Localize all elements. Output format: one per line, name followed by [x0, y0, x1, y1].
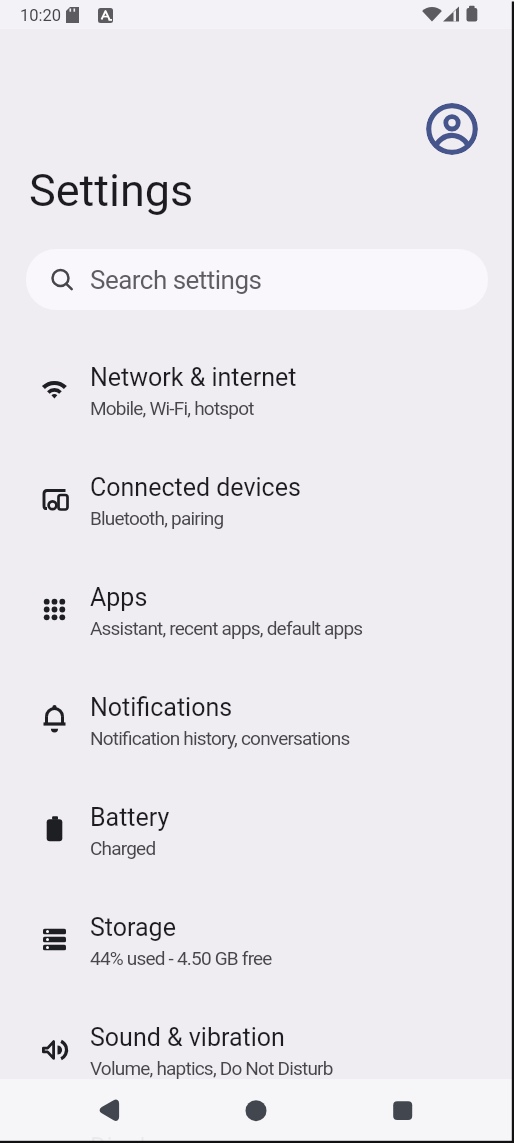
staticText: Battery [90, 803, 170, 832]
staticText: Assistant, recent apps, default apps [90, 617, 363, 639]
staticText: Network & internet [90, 363, 297, 392]
staticText: Notification history, conversations [90, 727, 350, 749]
staticText: Display [90, 1133, 171, 1143]
button[interactable]: Storage [0, 886, 514, 996]
button[interactable] [343, 1079, 514, 1143]
staticText: Volume, haptics, Do Not Disturb [90, 1057, 333, 1079]
staticText: Sound & vibration [90, 1023, 285, 1052]
button[interactable]: Display [0, 1106, 514, 1143]
staticText: Storage [90, 913, 176, 942]
staticText: 10:20 [20, 6, 62, 25]
button[interactable]: Notifications [0, 666, 514, 776]
button[interactable]: Network & internet [0, 336, 514, 446]
button[interactable]: Connected devices [0, 446, 514, 556]
staticText: Mobile, Wi-Fi, hotspot [90, 397, 254, 419]
staticText: Bluetooth, pairing [90, 507, 224, 529]
button[interactable]: Battery [0, 776, 514, 886]
staticText: Notifications [90, 693, 233, 722]
button[interactable]: Search settings [26, 249, 488, 310]
staticText: Apps [90, 583, 148, 612]
button[interactable] [426, 103, 478, 155]
staticText: Charged [90, 837, 156, 859]
staticText: 44% used - 4.50 GB free [90, 947, 272, 969]
button[interactable]: Apps [0, 556, 514, 666]
staticText: Settings [29, 164, 194, 217]
button[interactable]: Sound & vibration [0, 996, 514, 1106]
staticText: Connected devices [90, 473, 301, 502]
staticText: Search settings [90, 265, 262, 295]
button[interactable] [0, 1079, 172, 1143]
button[interactable] [172, 1079, 343, 1143]
